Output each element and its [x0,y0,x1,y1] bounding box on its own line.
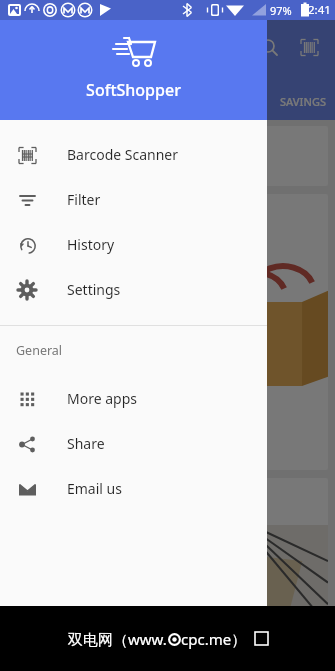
staticText: SoftShopper [86,79,181,101]
button[interactable]: Email us [0,466,267,511]
button[interactable]: History [0,222,267,267]
staticText: More apps [67,389,137,408]
staticText: Share [67,434,105,453]
staticText: 97% [270,3,292,18]
button[interactable]: Barcode Scanner [0,132,267,177]
button[interactable]: SoftShopper [0,20,267,120]
staticText: your wishlists [19,431,98,447]
button[interactable]: amazon [7,194,328,470]
button[interactable]: Filter [0,177,267,222]
staticText: Barcode Scanner [67,145,179,164]
button[interactable]: Search [249,27,289,67]
staticText: History [67,235,115,254]
staticText: cpc.me） [181,629,247,649]
staticText: General [16,342,63,359]
staticText: 双电网（www. [68,629,167,649]
staticText: Filter [67,190,101,209]
staticText: wishlist [31,323,185,377]
button[interactable]: SAVINGS [280,82,327,120]
staticText: 2:41 [308,2,331,18]
staticText: Email us [67,479,122,498]
button[interactable]: Recents [255,632,268,645]
button[interactable]: Barcode Scanner [289,27,329,67]
staticText: SAVINGS [280,94,327,109]
button[interactable]: amazon [7,478,328,671]
button[interactable] [7,126,328,186]
staticText: Settings [67,280,121,299]
staticText: amazon [19,494,72,513]
staticText: Check For [19,405,80,423]
button[interactable]: Settings [0,267,267,312]
button[interactable]: More apps [0,376,267,421]
button[interactable]: Share [0,421,267,466]
